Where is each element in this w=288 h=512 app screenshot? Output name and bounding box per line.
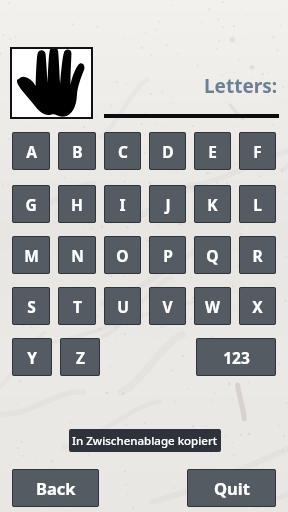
button[interactable]: D: [149, 132, 186, 170]
staticText: Back: [36, 477, 76, 499]
button[interactable]: H: [58, 185, 96, 223]
staticText: V: [162, 296, 173, 317]
staticText: J: [165, 194, 171, 215]
button[interactable]: K: [194, 185, 231, 223]
staticText: H: [71, 194, 83, 215]
staticText: U: [117, 296, 129, 317]
staticText: I: [119, 194, 126, 215]
button[interactable]: I: [104, 185, 141, 223]
button[interactable]: F: [239, 132, 276, 170]
button[interactable]: O: [104, 236, 141, 274]
staticText: Letters:: [204, 73, 278, 99]
staticText: P: [163, 245, 173, 266]
staticText: R: [252, 245, 263, 266]
button[interactable]: U: [104, 287, 141, 325]
staticText: A: [26, 141, 37, 162]
button[interactable]: Q: [194, 236, 231, 274]
staticText: E: [208, 141, 217, 162]
button[interactable]: S: [12, 287, 50, 325]
staticText: K: [207, 194, 218, 215]
staticText: Z: [76, 347, 85, 368]
staticText: B: [72, 141, 83, 162]
button[interactable]: R: [239, 236, 276, 274]
staticText: Y: [27, 347, 37, 368]
staticText: D: [162, 141, 174, 162]
button[interactable]: C: [104, 132, 141, 170]
button[interactable]: Quit: [187, 469, 276, 507]
staticText: L: [253, 194, 262, 215]
button[interactable]: N: [58, 236, 96, 274]
staticText: 123: [223, 347, 250, 368]
button[interactable]: J: [149, 185, 186, 223]
button[interactable]: A: [12, 132, 50, 170]
button[interactable]: Hand: [10, 47, 93, 119]
staticText: In Zwischenablage kopiert: [72, 433, 218, 449]
staticText: T: [73, 296, 82, 317]
button[interactable]: G: [12, 185, 50, 223]
staticText: C: [118, 141, 128, 162]
button[interactable]: V: [149, 287, 186, 325]
staticText: N: [71, 245, 84, 266]
button[interactable]: M: [12, 236, 50, 274]
button[interactable]: E: [194, 132, 231, 170]
staticText: F: [253, 141, 262, 162]
button[interactable]: W: [194, 287, 231, 325]
button[interactable]: T: [58, 287, 96, 325]
staticText: W: [205, 296, 220, 317]
staticText: O: [116, 245, 129, 266]
staticText: Quit: [214, 477, 250, 499]
button[interactable]: L: [239, 185, 276, 223]
staticText: S: [27, 296, 36, 317]
staticText: M: [24, 245, 39, 266]
button[interactable]: P: [149, 236, 186, 274]
button[interactable]: Back: [12, 469, 99, 507]
button[interactable]: X: [239, 287, 276, 325]
button[interactable]: Z: [60, 338, 100, 376]
staticText: Q: [206, 245, 219, 266]
button[interactable]: Y: [12, 338, 52, 376]
staticText: G: [25, 194, 37, 215]
staticText: X: [252, 296, 263, 317]
button[interactable]: 123: [196, 338, 276, 376]
button[interactable]: B: [58, 132, 96, 170]
